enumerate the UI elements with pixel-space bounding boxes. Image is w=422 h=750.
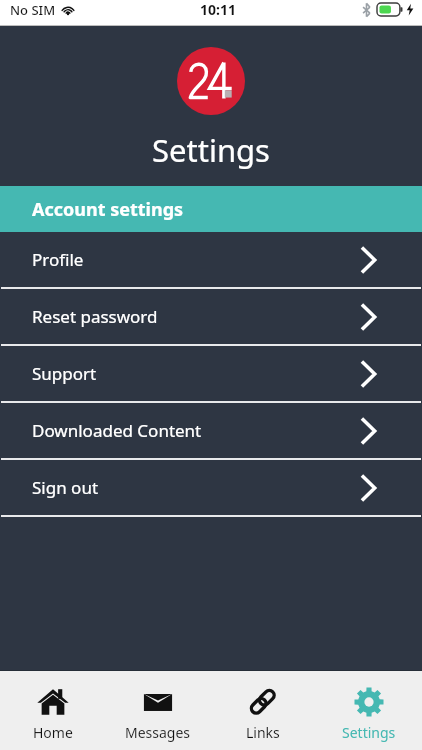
- staticText: Settings: [152, 129, 270, 171]
- button[interactable]: Reset password: [0, 289, 422, 344]
- button[interactable]: Home: [0, 680, 105, 742]
- staticText: Links: [246, 723, 280, 742]
- staticText: Support: [32, 362, 97, 385]
- staticText: 10:11: [200, 0, 236, 19]
- staticText: Messages: [125, 723, 191, 742]
- button[interactable]: Downloaded Content: [0, 403, 422, 458]
- button[interactable]: Settings: [316, 680, 422, 742]
- staticText: Settings: [342, 723, 396, 742]
- button[interactable]: Links: [210, 680, 316, 742]
- staticText: Downloaded Content: [32, 419, 202, 442]
- button[interactable]: Profile: [0, 232, 422, 287]
- button[interactable]: Support: [0, 346, 422, 401]
- staticText: No SIM: [10, 1, 56, 19]
- staticText: Profile: [32, 248, 84, 271]
- button[interactable]: Sign out: [0, 460, 422, 515]
- staticText: Account settings: [32, 197, 184, 222]
- staticText: Home: [33, 723, 73, 742]
- staticText: Reset password: [32, 305, 158, 328]
- button[interactable]: Messages: [105, 680, 210, 742]
- staticText: Sign out: [32, 476, 99, 499]
